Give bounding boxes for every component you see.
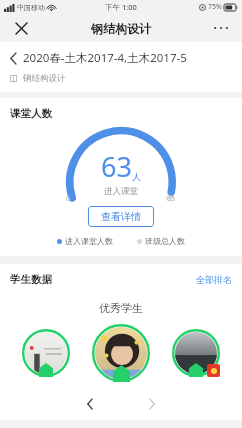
staticText: 优秀学生 <box>99 301 143 315</box>
button[interactable]: Student avatar <box>22 329 70 377</box>
staticText: 进入课堂 <box>104 186 138 197</box>
staticText: 65 <box>167 194 176 204</box>
button[interactable]: Previous <box>78 392 102 416</box>
staticText: 钢结构设计 <box>91 21 151 36</box>
staticText: 全部排名 <box>196 274 232 285</box>
button[interactable]: 2020春-土木2017-4,土木2017-5 <box>0 49 242 67</box>
button[interactable]: Close <box>8 15 34 41</box>
button[interactable]: Next <box>140 392 164 416</box>
staticText: 学生数据 <box>10 273 52 286</box>
button[interactable]: Student avatar <box>92 324 150 382</box>
staticText: 75% <box>208 2 222 12</box>
staticText: 进入课堂人数 <box>65 236 113 246</box>
button[interactable]: 查看详情 <box>88 206 154 227</box>
staticText: 人 <box>132 171 141 182</box>
staticText: 钢结构设计 <box>23 73 66 84</box>
staticText: 63 <box>101 148 132 185</box>
staticText: 0 <box>66 194 71 204</box>
staticText: 查看详情 <box>101 210 141 223</box>
button[interactable]: More options <box>208 15 234 41</box>
staticText: 中国移动 <box>17 3 45 12</box>
staticText: 班级总人数 <box>145 236 185 246</box>
staticText: 课堂人数 <box>10 107 52 120</box>
button[interactable]: 全部排名 <box>196 274 232 285</box>
staticText: 下午 1:00 <box>105 2 137 12</box>
button[interactable]: Student avatar <box>172 329 220 377</box>
staticText: 2020春-土木2017-4,土木2017-5 <box>23 50 187 66</box>
